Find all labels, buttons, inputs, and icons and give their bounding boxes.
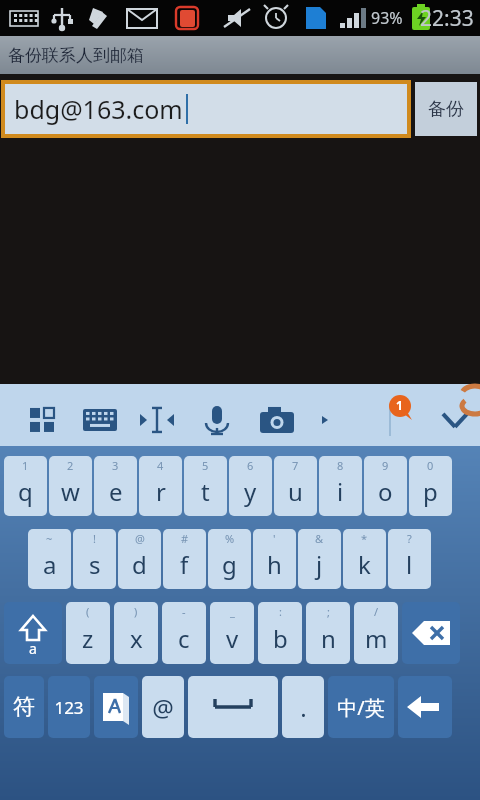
staticText: y	[244, 475, 257, 508]
button[interactable]: 5	[184, 456, 227, 516]
staticText: &	[315, 531, 324, 546]
staticText: f	[180, 548, 189, 581]
staticText: 备份联系人到邮箱	[8, 45, 144, 66]
staticText: )	[134, 604, 138, 619]
button[interactable]: Voice input	[195, 398, 239, 442]
staticText: i	[337, 475, 344, 508]
button[interactable]: 7	[274, 456, 317, 516]
staticText: *	[361, 531, 368, 546]
staticText: ;	[327, 604, 330, 619]
button[interactable]: '	[253, 529, 296, 589]
staticText: 备份	[428, 98, 464, 121]
staticText: /	[374, 604, 379, 619]
staticText: 中/英	[337, 694, 385, 721]
button[interactable]: 3	[94, 456, 137, 516]
button[interactable]: Dictionary	[94, 676, 138, 738]
button[interactable]: &	[298, 529, 341, 589]
button[interactable]: *	[343, 529, 386, 589]
button[interactable]: Hide keyboard	[433, 398, 477, 442]
staticText: 8	[337, 458, 344, 473]
staticText: v	[226, 622, 239, 655]
staticText: bdg@163.com	[14, 92, 183, 126]
staticText: #	[181, 531, 189, 546]
button[interactable]: .	[282, 676, 324, 738]
button[interactable]: Camera input	[255, 398, 299, 442]
staticText: 9	[382, 458, 389, 473]
staticText: h	[267, 548, 282, 581]
button[interactable]: 123	[48, 676, 90, 738]
button[interactable]: @	[118, 529, 161, 589]
button[interactable]: 中/英	[328, 676, 394, 738]
staticText: ~	[46, 531, 53, 546]
staticText: 0	[427, 458, 434, 473]
staticText: c	[178, 622, 190, 655]
staticText: z	[82, 622, 94, 655]
staticText: %	[225, 531, 235, 546]
staticText: e	[109, 475, 123, 508]
button[interactable]: Enter	[398, 676, 452, 738]
button[interactable]: 1	[4, 456, 47, 516]
button[interactable]: :	[258, 602, 302, 664]
staticText: 4	[157, 458, 164, 473]
staticText: m	[365, 622, 388, 655]
button[interactable]: Keyboard layout	[78, 398, 122, 442]
button[interactable]: Move cursor	[135, 398, 179, 442]
button[interactable]: Space	[188, 676, 278, 738]
staticText: _	[230, 604, 235, 619]
button[interactable]: ;	[306, 602, 350, 664]
button[interactable]: _	[210, 602, 254, 664]
staticText: d	[132, 548, 147, 581]
staticText: 符	[13, 693, 35, 721]
button[interactable]: #	[163, 529, 206, 589]
staticText: 123	[54, 696, 84, 719]
button[interactable]: )	[114, 602, 158, 664]
staticText: g	[222, 548, 237, 581]
staticText: 2	[67, 458, 74, 473]
staticText: l	[406, 548, 413, 581]
staticText: @	[152, 691, 174, 724]
button[interactable]: (	[66, 602, 110, 664]
staticText: -	[182, 604, 186, 619]
staticText: 1	[22, 458, 29, 473]
staticText: 3	[112, 458, 119, 473]
button[interactable]: bdg@163.com	[5, 84, 407, 134]
staticText: w	[61, 475, 80, 508]
button[interactable]: ~	[28, 529, 71, 589]
button[interactable]: 备份	[415, 82, 477, 136]
staticText: @	[135, 531, 145, 546]
staticText: j	[316, 548, 323, 581]
staticText: n	[321, 622, 336, 655]
button[interactable]: Symbols panel	[20, 398, 64, 442]
staticText: 5	[202, 458, 209, 473]
button[interactable]: 2	[49, 456, 92, 516]
staticText: t	[201, 475, 210, 508]
button[interactable]: %	[208, 529, 251, 589]
button[interactable]: ?	[388, 529, 431, 589]
button[interactable]: 0	[409, 456, 452, 516]
staticText: ?	[407, 531, 412, 546]
button[interactable]: /	[354, 602, 398, 664]
button[interactable]: @	[142, 676, 184, 738]
staticText: x	[130, 622, 143, 655]
staticText: '	[273, 531, 276, 546]
button[interactable]: !	[73, 529, 116, 589]
staticText: q	[18, 475, 33, 508]
staticText: p	[423, 475, 438, 508]
staticText: b	[273, 622, 288, 655]
button[interactable]: 9	[364, 456, 407, 516]
button[interactable]: Backspace	[402, 602, 460, 664]
button[interactable]: -	[162, 602, 206, 664]
button[interactable]: Shift	[4, 602, 62, 664]
staticText: s	[89, 548, 101, 581]
staticText: a	[29, 639, 37, 658]
button[interactable]: 符	[4, 676, 44, 738]
staticText: 6	[247, 458, 254, 473]
button[interactable]: 8	[319, 456, 362, 516]
button[interactable]: 6	[229, 456, 272, 516]
staticText: k	[358, 548, 371, 581]
staticText: o	[378, 475, 393, 508]
staticText: .	[300, 691, 307, 724]
staticText: 7	[292, 458, 299, 473]
staticText: (	[86, 604, 90, 619]
button[interactable]: 4	[139, 456, 182, 516]
